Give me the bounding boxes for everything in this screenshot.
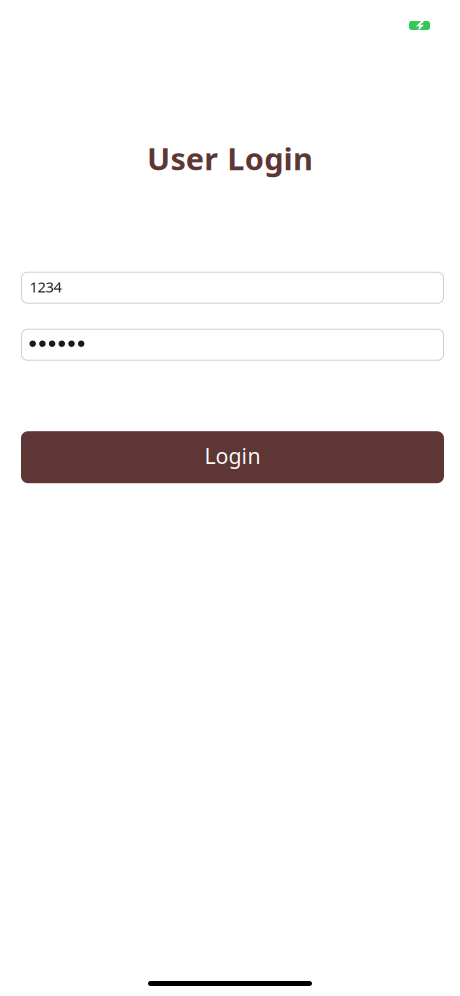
button[interactable]: Username, 1234: [21, 272, 443, 303]
staticText: 1234: [29, 277, 61, 296]
staticText: Login: [204, 442, 260, 470]
button[interactable]: Password: [21, 329, 443, 360]
button[interactable]: Login: [21, 431, 444, 483]
staticText: User Login: [147, 138, 313, 179]
